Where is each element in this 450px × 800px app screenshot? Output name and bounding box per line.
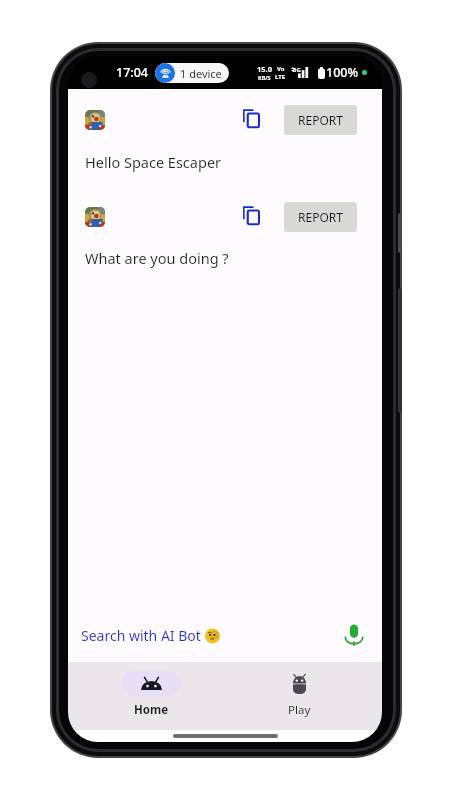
- button[interactable]: Home: [77, 662, 225, 730]
- staticText: 100%: [326, 64, 359, 81]
- staticText: Vo: [277, 65, 285, 73]
- staticText: 1 device: [180, 66, 222, 81]
- staticText: 5G: [293, 66, 301, 74]
- button[interactable]: 1 device: [155, 63, 229, 83]
- button[interactable]: Voice search: [338, 621, 370, 649]
- staticText: REPORT: [298, 209, 343, 225]
- staticText: Search with AI Bot: [81, 626, 205, 645]
- button[interactable]: Copy: [237, 202, 265, 232]
- button[interactable]: REPORT: [284, 202, 357, 232]
- button[interactable]: Play: [225, 662, 373, 730]
- button[interactable]: REPORT: [284, 105, 357, 135]
- staticText: 17:04: [116, 64, 149, 81]
- staticText: Hello Space Escaper: [85, 152, 222, 172]
- staticText: What are you doing ?: [85, 248, 229, 268]
- button[interactable]: Copy: [237, 105, 265, 135]
- staticText: REPORT: [298, 112, 343, 128]
- staticText: 15.0: [257, 64, 272, 74]
- staticText: Home: [134, 702, 169, 718]
- staticText: Play: [288, 702, 311, 718]
- staticText: KB/S: [258, 74, 271, 81]
- staticText: LTE: [275, 73, 286, 81]
- button[interactable]: Search with AI Bot: [81, 626, 338, 645]
